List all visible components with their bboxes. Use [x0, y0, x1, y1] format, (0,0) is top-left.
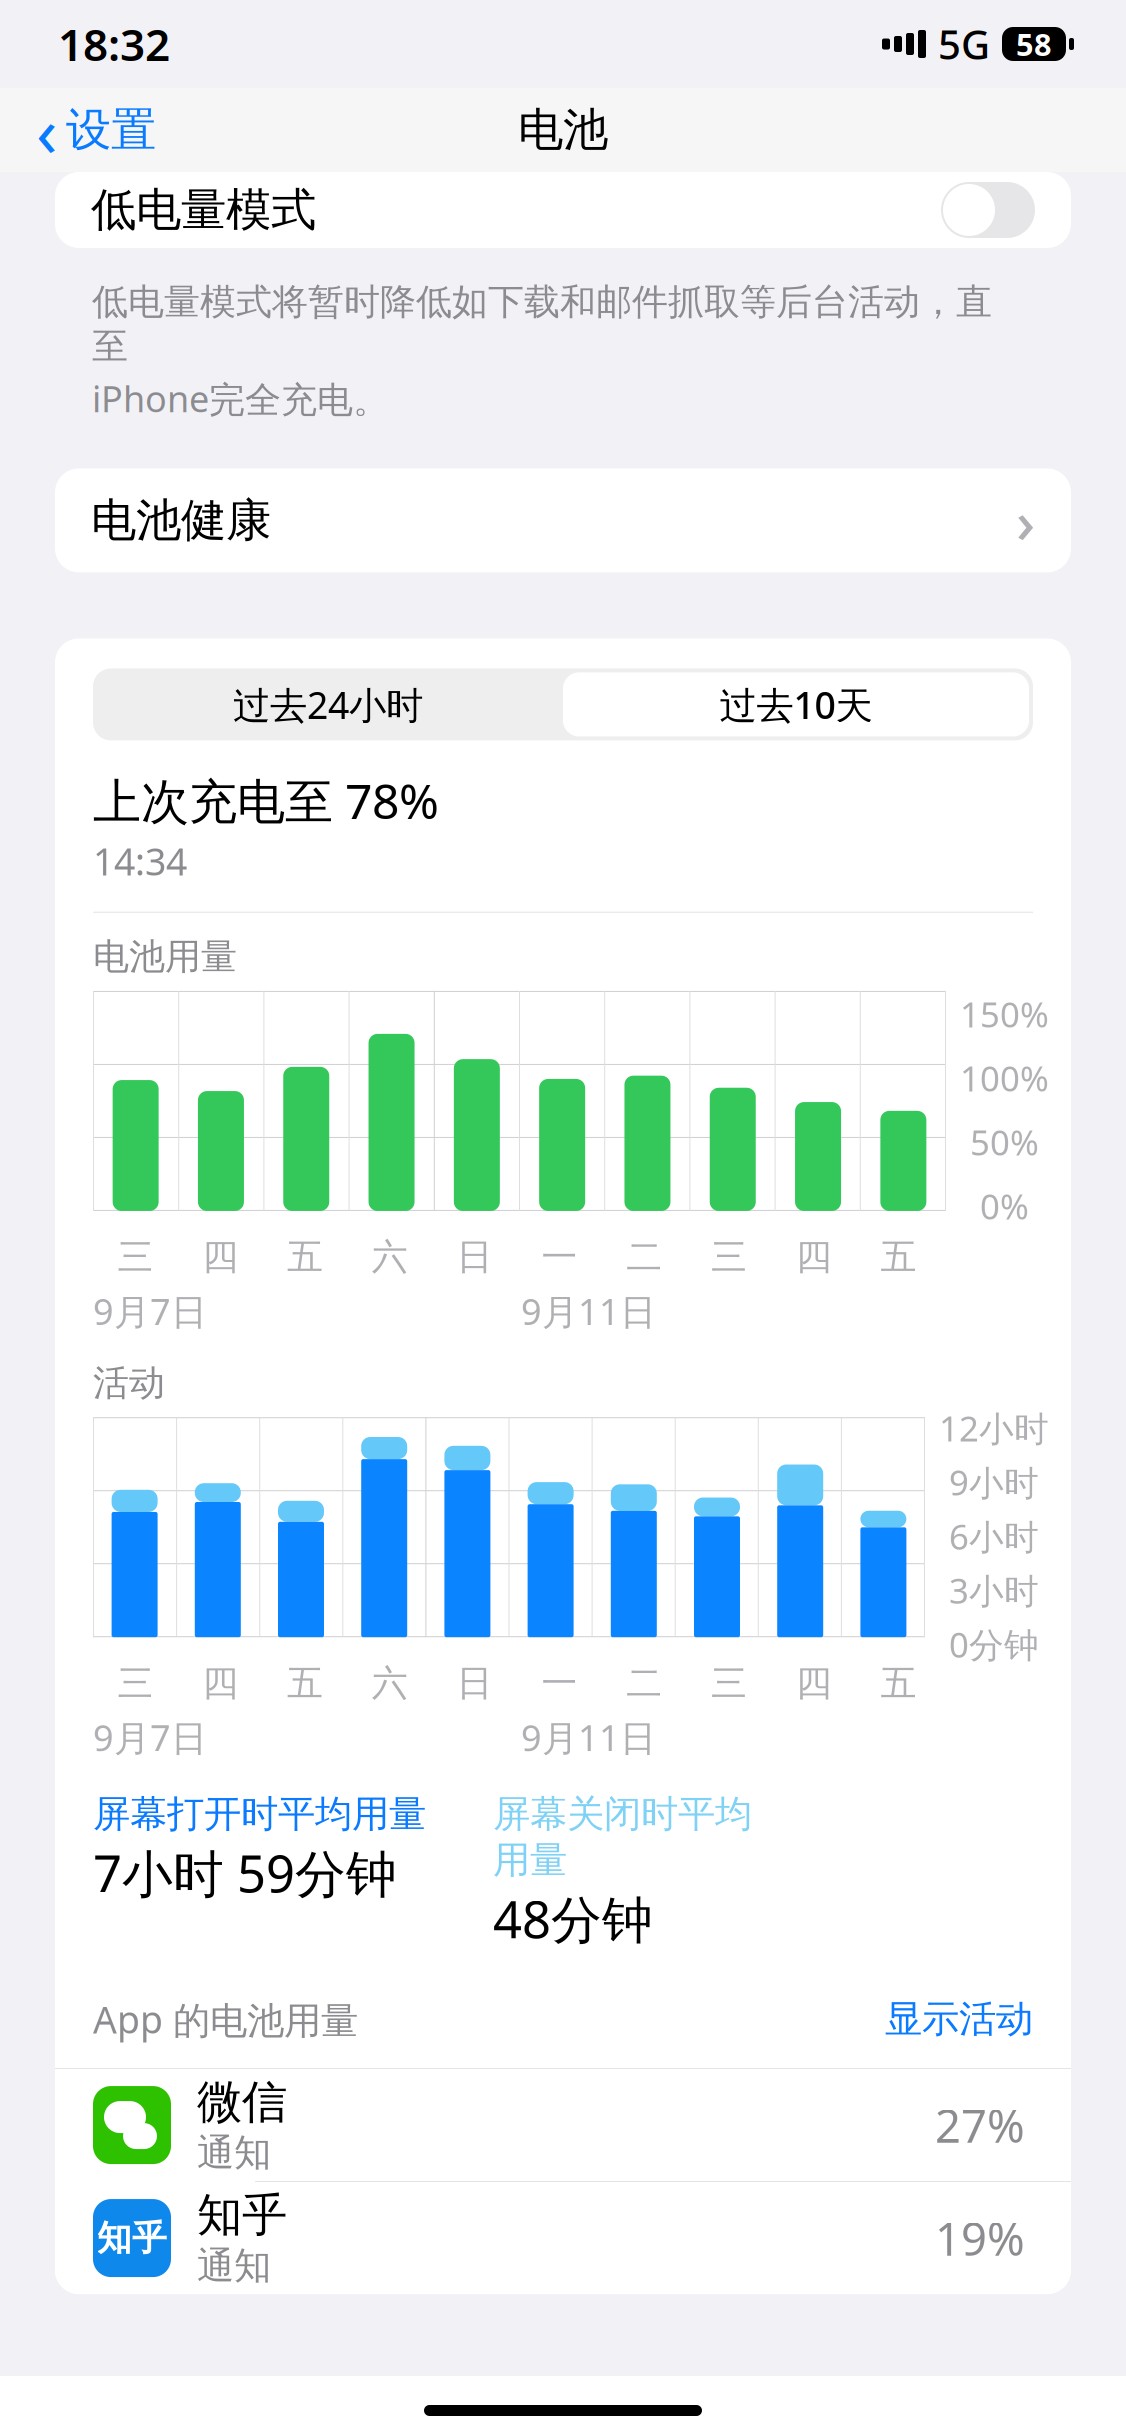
staticText: 9小时 — [949, 1459, 1039, 1505]
staticText: 二 — [626, 1235, 662, 1279]
staticText: 屏幕打开时平均用量 — [93, 1791, 426, 1837]
staticText: 过去24小时 — [233, 680, 423, 729]
button[interactable]: ‹ — [30, 76, 162, 184]
staticText: 知乎 — [97, 2217, 167, 2259]
button[interactable]: 过去10天 — [563, 672, 1029, 736]
button[interactable]: 知乎 — [55, 2182, 1071, 2294]
staticText: 电池健康 — [91, 493, 271, 548]
staticText: 100% — [960, 1055, 1049, 1101]
staticText: 六 — [372, 1661, 408, 1705]
button[interactable]: 微信 — [55, 2069, 1071, 2181]
staticText: ‹ — [36, 84, 57, 176]
staticText: 五 — [881, 1661, 917, 1705]
staticText: 低电量模式将暂时降低如下载和邮件抓取等后台活动，直至 — [92, 280, 992, 368]
staticText: 9月11日 — [521, 1287, 656, 1335]
staticText: 通知 — [197, 2243, 271, 2289]
staticText: 三 — [711, 1661, 747, 1705]
staticText: › — [1016, 481, 1035, 559]
staticText: 三 — [117, 1661, 153, 1705]
staticText: 电池 — [518, 102, 608, 158]
button[interactable]: 低电量模式 — [55, 172, 1071, 248]
staticText: 一 — [541, 1661, 577, 1705]
staticText: App 的电池用量 — [93, 1994, 358, 2044]
staticText: 五 — [881, 1235, 917, 1279]
staticText: 18:32 — [58, 15, 170, 73]
staticText: 四 — [202, 1661, 238, 1705]
staticText: 四 — [796, 1661, 832, 1705]
staticText: 五 — [287, 1661, 323, 1705]
staticText: 显示活动 — [885, 1996, 1033, 2042]
staticText: 知乎 — [197, 2187, 287, 2243]
staticText: 一 — [541, 1235, 577, 1279]
staticText: 9月7日 — [93, 1713, 207, 1761]
staticText: 微信 — [197, 2074, 287, 2130]
staticText: 50% — [970, 1119, 1039, 1165]
staticText: 三 — [711, 1235, 747, 1279]
staticText: iPhone完全充电。 — [92, 374, 389, 422]
staticText: 通知 — [197, 2130, 271, 2176]
staticText: 9月7日 — [93, 1287, 207, 1335]
staticText: 六 — [372, 1235, 408, 1279]
staticText: 日 — [457, 1661, 493, 1705]
staticText: 二 — [626, 1661, 662, 1705]
staticText: 14:34 — [93, 836, 187, 886]
staticText: 电池用量 — [93, 935, 237, 979]
button[interactable]: 显示活动 — [875, 1990, 1033, 2048]
staticText: 设置 — [66, 102, 156, 158]
staticText: 屏幕关闭时平均用量 — [493, 1791, 752, 1883]
staticText: 9月11日 — [521, 1713, 656, 1761]
staticText: 150% — [960, 991, 1049, 1037]
staticText: 12小时 — [939, 1405, 1049, 1451]
staticText: 7小时 59分钟 — [93, 1839, 397, 1906]
staticText: 58 — [1016, 24, 1052, 64]
staticText: 四 — [796, 1235, 832, 1279]
staticText: 五 — [287, 1235, 323, 1279]
staticText: 三 — [117, 1235, 153, 1279]
staticText: 19% — [935, 2208, 1025, 2268]
staticText: 6小时 — [949, 1513, 1039, 1559]
staticText: 四 — [202, 1235, 238, 1279]
staticText: 3小时 — [949, 1567, 1039, 1613]
button[interactable]: 过去24小时 — [93, 668, 563, 740]
staticText: 5G — [938, 17, 990, 70]
staticText: 过去10天 — [719, 680, 872, 729]
staticText: 活动 — [93, 1361, 165, 1405]
staticText: 0% — [980, 1183, 1029, 1229]
staticText: 上次充电至 78% — [93, 768, 439, 832]
staticText: 48分钟 — [493, 1885, 653, 1952]
staticText: 低电量模式 — [91, 182, 316, 238]
staticText: 0分钟 — [949, 1621, 1039, 1667]
staticText: 27% — [935, 2095, 1025, 2155]
staticText: 日 — [457, 1235, 493, 1279]
button[interactable]: 电池健康 — [55, 468, 1071, 572]
